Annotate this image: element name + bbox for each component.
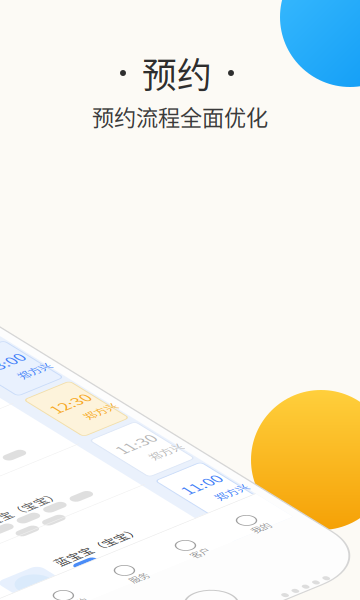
staticText: 宝宝（宝宝） — [122, 512, 218, 535]
staticText: 预约 — [142, 48, 212, 98]
staticText: 郑方兴 — [341, 516, 360, 536]
staticText: 12:30 — [323, 372, 360, 401]
staticText: 11:30 — [323, 480, 360, 509]
staticText: 预约流程全面优化 — [92, 100, 268, 132]
